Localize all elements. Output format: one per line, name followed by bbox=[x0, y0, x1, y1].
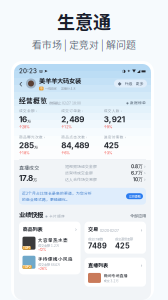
staticText: 02/20-02/27 bbox=[100, 229, 119, 233]
staticText: 直播成交 bbox=[19, 164, 39, 171]
staticText: 成交退货金额 bbox=[115, 237, 133, 241]
staticText: ◍ bbox=[39, 68, 43, 74]
staticText: 生意通 bbox=[57, 8, 111, 34]
staticText: 3,921 bbox=[104, 114, 125, 124]
staticText: ‹ bbox=[19, 78, 23, 89]
staticText: +26% bbox=[38, 267, 47, 271]
button[interactable]: 短视频场成交金额 bbox=[65, 164, 146, 169]
staticText: 成交金额 › bbox=[19, 108, 37, 113]
staticText: 万 bbox=[33, 177, 37, 183]
staticText: 升级 bbox=[124, 81, 132, 86]
staticText: › bbox=[140, 227, 142, 233]
staticText: 万 bbox=[34, 144, 38, 150]
staticText: 425 bbox=[115, 241, 130, 250]
staticText: 手持便携小风扇 bbox=[38, 256, 73, 262]
staticText: 晚间专场直播 bbox=[103, 273, 127, 278]
staticText: 全部应用 bbox=[130, 213, 146, 219]
button[interactable]: 成交订单数 › bbox=[61, 108, 104, 129]
staticText: 425 bbox=[104, 140, 119, 150]
button[interactable]: ◆ bbox=[114, 79, 147, 87]
staticText: 中 bbox=[40, 87, 43, 90]
staticText: › bbox=[143, 170, 146, 175]
staticText: 成交金额 664万 bbox=[38, 262, 60, 267]
staticText: 7489 bbox=[88, 241, 107, 250]
staticText: 万 bbox=[27, 118, 31, 124]
staticText: 商品列表 bbox=[22, 225, 42, 233]
staticText: 直播列表 bbox=[88, 261, 108, 269]
staticText: › bbox=[75, 226, 77, 232]
staticText: ➤ bbox=[44, 68, 48, 74]
staticText: ↑18% bbox=[19, 151, 30, 155]
staticText: 16 bbox=[19, 114, 27, 124]
staticText: ↑3% bbox=[104, 151, 113, 155]
staticText: ◢ bbox=[137, 68, 140, 73]
staticText: ↑12% bbox=[61, 125, 72, 129]
staticText: 2,489 bbox=[61, 114, 84, 124]
staticText: 成交金额 1.2万 bbox=[38, 243, 59, 248]
staticText: 20:23 bbox=[19, 67, 37, 75]
button[interactable]: 全部应用 bbox=[130, 213, 146, 219]
staticText: 10万 bbox=[133, 176, 143, 182]
button[interactable]: 商品曝光次数 › bbox=[19, 134, 61, 155]
staticText: 84,489 bbox=[61, 140, 89, 150]
staticText: 数据截止 02/27 18:00 bbox=[49, 100, 81, 105]
staticText: 达人合作场交易额 bbox=[65, 176, 97, 182]
staticText: TOP2 bbox=[23, 265, 31, 269]
staticText: 成交 3.2万 bbox=[103, 278, 118, 283]
staticText: 立即查看 bbox=[128, 194, 140, 199]
staticText: 交易 bbox=[88, 225, 98, 233]
button[interactable]: 进店访客数 › bbox=[104, 134, 146, 155]
staticText: 17.8 bbox=[19, 173, 33, 183]
staticText: 美羊羊大码女装 bbox=[39, 76, 81, 85]
staticText: 成交人数 › bbox=[104, 108, 122, 113]
staticText: 大容量热水壶 bbox=[38, 237, 68, 243]
button[interactable]: 货架场成交金额 bbox=[65, 170, 146, 175]
button[interactable]: 返回 bbox=[18, 77, 24, 90]
staticText: ◈ 数据榜单 bbox=[126, 100, 146, 105]
staticText: ◑ bbox=[122, 68, 126, 73]
staticText: 商品曝光次数 › bbox=[19, 134, 45, 139]
staticText: 货架场成交金额 bbox=[65, 170, 93, 176]
staticText: ✦ bbox=[127, 68, 131, 73]
staticText: 285 bbox=[19, 140, 34, 150]
button[interactable]: 交易 bbox=[84, 222, 146, 254]
staticText: › bbox=[143, 177, 146, 182]
button[interactable]: 直播列表 bbox=[84, 258, 146, 287]
staticText: +12% bbox=[38, 248, 46, 252]
staticText: 的商业模式路，更精细化。 bbox=[22, 197, 70, 202]
staticText: ↑6% bbox=[61, 151, 70, 155]
staticText: 一线商家 bbox=[45, 86, 57, 91]
staticText: 0.8万 bbox=[131, 163, 143, 169]
button[interactable]: ◈ 数据榜单 bbox=[126, 100, 146, 105]
staticText: 经营概览 bbox=[19, 96, 47, 105]
button[interactable]: 近2个月占比增长最高的渠道，为您分析 bbox=[19, 188, 146, 205]
staticText: ▬ bbox=[141, 68, 146, 74]
staticText: 近2个月占比增长最高的渠道，为您分析 bbox=[22, 190, 92, 196]
staticText: 看市场 | 定竞对 | 解问题 bbox=[32, 37, 136, 51]
staticText: TOP1 bbox=[23, 246, 30, 250]
staticText: 短视频场成交金额 bbox=[65, 163, 97, 169]
staticText: 成交订单数 › bbox=[61, 108, 83, 113]
staticText: 业绩快报 bbox=[19, 209, 43, 219]
button[interactable]: 达人合作场交易额 bbox=[65, 177, 146, 182]
button[interactable]: 成交金额 › bbox=[19, 108, 61, 129]
staticText: ↑9% bbox=[104, 125, 113, 129]
button[interactable]: 商品点击次数 › bbox=[61, 134, 104, 155]
staticText: › bbox=[143, 164, 146, 169]
staticText: 更多 bbox=[135, 81, 143, 86]
staticText: 商品点击次数 › bbox=[61, 134, 87, 139]
staticText: ▼ bbox=[132, 69, 136, 73]
staticText: 6.7万 bbox=[131, 170, 143, 176]
staticText: › bbox=[140, 262, 142, 268]
staticText: 店铺分 4.8 bbox=[61, 86, 76, 91]
staticText: 进店访客数 › bbox=[104, 134, 126, 139]
staticText: 成交订单数 bbox=[88, 237, 103, 241]
staticText: ◈ 卡片顺序 bbox=[45, 213, 65, 219]
button[interactable]: 成交人数 › bbox=[104, 108, 146, 129]
staticText: ◆ bbox=[117, 81, 121, 86]
button[interactable]: 商品列表 bbox=[19, 222, 80, 274]
staticText: ↑28% bbox=[19, 125, 30, 129]
